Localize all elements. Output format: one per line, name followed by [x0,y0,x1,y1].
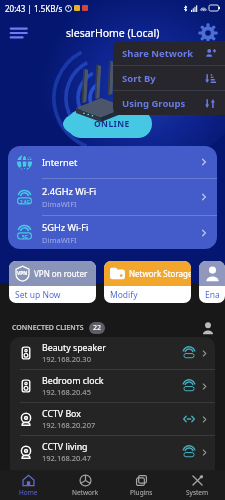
staticText: DimaWIFI [42,199,77,209]
staticText: Beauty speaker [42,342,106,354]
button[interactable]: Network Storage [104,261,191,303]
staticText: 20:43 | 1.5KB/s [5,3,63,14]
staticText: 2.4G [20,199,30,205]
staticText: Plugins [130,488,153,497]
staticText: ONLINE [94,118,130,130]
staticText: Share Network [122,47,194,60]
staticText: Sort By [122,72,156,85]
button[interactable]: Share Network [113,41,225,65]
button[interactable]: 2.4G [8,179,217,215]
staticText: Using Groups [122,97,186,110]
staticText: 192.168.20.30 [42,354,91,364]
staticText: Network Storage [129,268,191,279]
button[interactable]: VPN [9,261,96,303]
staticText: 192.168.20.207 [42,420,96,430]
staticText: Home [19,488,38,497]
staticText: 5G [22,234,28,240]
staticText: 22 [93,323,102,333]
button[interactable]: Bedroom clock [10,370,215,402]
button[interactable]: Settings [197,22,219,44]
button[interactable]: System [169,470,225,500]
staticText: VPN [17,270,28,277]
staticText: slesarHome (Local) [66,26,160,40]
button[interactable]: Ena [199,261,225,303]
button[interactable]: Menu [6,20,32,46]
button[interactable]: 5G [8,216,217,249]
staticText: Internet [42,156,78,169]
staticText: 5GHz Wi-Fi [42,221,89,234]
button[interactable]: Manage clients [201,321,215,335]
staticText: Bedroom clock [42,375,104,387]
button[interactable]: Network [57,470,113,500]
button[interactable]: Using Groups [113,91,225,115]
button[interactable]: CCTV living [10,436,215,468]
staticText: 192.168.20.45 [42,387,91,397]
staticText: System [186,488,209,497]
staticText: CONNECTED CLIENTS [12,323,84,333]
button[interactable]: Sort By [113,66,225,90]
button[interactable]: Beauty speaker [10,337,215,369]
staticText: Set up Now [15,289,61,301]
button[interactable]: Internet [8,146,217,178]
staticText: DimaWIFI [42,235,77,245]
staticText: VPN on router [34,268,88,279]
staticText: 2.4GHz Wi-Fi [42,185,97,198]
staticText: Network [72,488,99,497]
staticText: CCTV living [42,441,88,453]
staticText: CCTV Box [42,408,81,420]
button[interactable]: CCTV Box [10,403,215,435]
staticText: Modify [110,289,138,301]
staticText: Ena [205,289,220,301]
button[interactable]: Plugins [113,470,169,500]
staticText: 192.168.20.47 [42,453,91,463]
button[interactable]: Home [0,470,57,500]
